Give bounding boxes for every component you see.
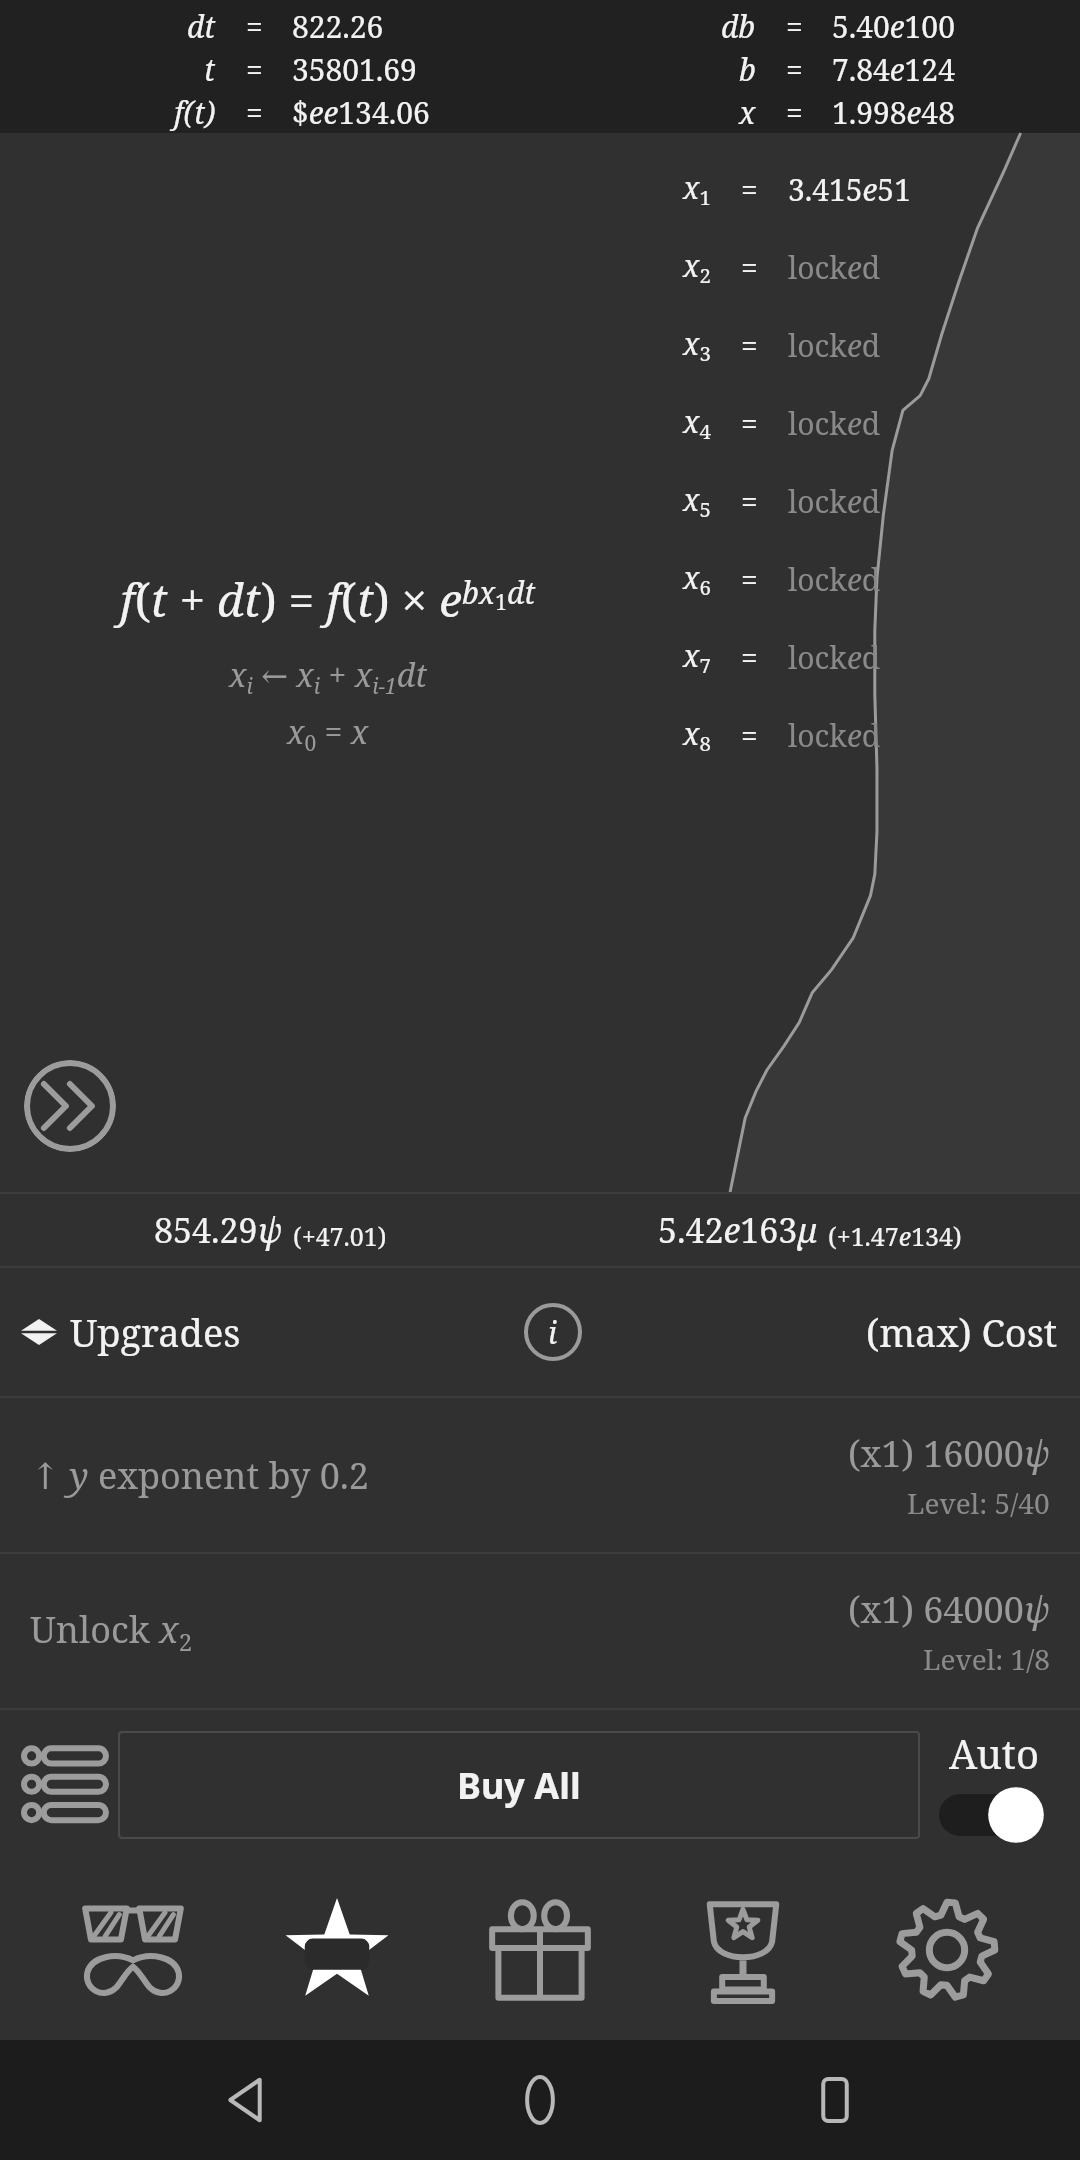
staticText: $ee134.06 xyxy=(292,92,430,133)
button[interactable]: Buy All xyxy=(118,1731,920,1839)
staticText: = xyxy=(741,403,758,444)
staticText: 1.998e48 xyxy=(832,92,955,133)
staticText: locked xyxy=(788,715,881,756)
staticText: = xyxy=(246,92,263,133)
button[interactable]: Disguise xyxy=(63,1880,203,2020)
staticText: 3.415e51 xyxy=(788,169,911,210)
staticText: locked xyxy=(788,481,881,522)
staticText: locked xyxy=(788,637,881,678)
staticText: locked xyxy=(788,559,881,600)
staticText: x4 xyxy=(683,401,711,445)
staticText: ↑ y exponent by 0.2 xyxy=(30,1451,848,1500)
staticText: = xyxy=(741,559,758,600)
staticText: (x1) 64000ψ xyxy=(848,1585,1050,1634)
button[interactable]: Gifts xyxy=(470,1880,610,2020)
staticText: x6 xyxy=(683,557,711,601)
button[interactable]: List view xyxy=(14,1733,118,1837)
staticText: db xyxy=(721,6,756,47)
staticText: (+47.01) xyxy=(293,1219,387,1253)
staticText: 5.40e100 xyxy=(832,6,955,47)
button[interactable]: Unlock x2 xyxy=(0,1554,1080,1708)
staticText: Level: 5/40 xyxy=(907,1484,1050,1522)
staticText: x xyxy=(739,92,756,133)
staticText: x7 xyxy=(683,635,711,679)
button[interactable]: ↑ y exponent by 0.2 xyxy=(0,1398,1080,1552)
staticText: = xyxy=(741,247,758,288)
staticText: = xyxy=(786,92,803,133)
staticText: 35801.69 xyxy=(292,49,417,90)
staticText: (x1) 16000ψ xyxy=(848,1429,1050,1478)
staticText: = xyxy=(246,6,263,47)
staticText: x1 xyxy=(683,167,711,211)
staticText: = xyxy=(741,325,758,366)
staticText: 854.29ψ xyxy=(154,1207,283,1253)
staticText: locked xyxy=(788,403,881,444)
staticText: = xyxy=(741,169,758,210)
button[interactable]: Achievements xyxy=(673,1880,813,2020)
staticText: f(t + dt) = f(t) × ebx1dt xyxy=(120,568,536,631)
staticText: x3 xyxy=(683,323,711,367)
button[interactable]: Recents xyxy=(785,2050,885,2150)
staticText: (max) Cost xyxy=(866,1306,1058,1358)
staticText: = xyxy=(741,481,758,522)
button[interactable]: Information xyxy=(523,1302,583,1362)
staticText: x5 xyxy=(683,479,711,523)
staticText: = xyxy=(786,49,803,90)
staticText: x2 xyxy=(683,245,711,289)
staticText: x8 xyxy=(683,713,711,757)
staticText: x0 = x xyxy=(287,710,369,757)
button[interactable]: Upgrades xyxy=(0,1268,1080,1396)
staticText: f(t) xyxy=(174,92,216,133)
staticText: Auto xyxy=(949,1726,1039,1780)
staticText: i xyxy=(548,1312,558,1353)
staticText: 822.26 xyxy=(292,6,384,47)
staticText: Level: 1/8 xyxy=(923,1640,1050,1678)
staticText: = xyxy=(741,637,758,678)
staticText: b xyxy=(739,49,756,90)
staticText: xi ← xi + xi−1dt xyxy=(229,653,428,700)
staticText: 5.42e163µ xyxy=(658,1207,818,1253)
staticText: Unlock x2 xyxy=(30,1605,848,1658)
staticText: 7.84e124 xyxy=(832,49,955,90)
button[interactable]: Fast forward xyxy=(24,1060,116,1152)
button[interactable]: Home xyxy=(490,2050,590,2150)
staticText: Upgrades xyxy=(70,1306,241,1358)
staticText: locked xyxy=(788,247,881,288)
staticText: (+1.47e134) xyxy=(828,1219,962,1253)
staticText: dt xyxy=(187,6,216,47)
button[interactable]: Settings xyxy=(877,1880,1017,2020)
staticText: Buy All xyxy=(457,1761,581,1810)
staticText: t xyxy=(204,49,216,90)
staticText: = xyxy=(741,715,758,756)
button[interactable]: Auto xyxy=(920,1726,1080,1844)
button[interactable]: Stars: 1378 xyxy=(267,1880,407,2020)
button[interactable]: Back xyxy=(195,2050,295,2150)
staticText: = xyxy=(246,49,263,90)
staticText: locked xyxy=(788,325,881,366)
staticText: = xyxy=(786,6,803,47)
